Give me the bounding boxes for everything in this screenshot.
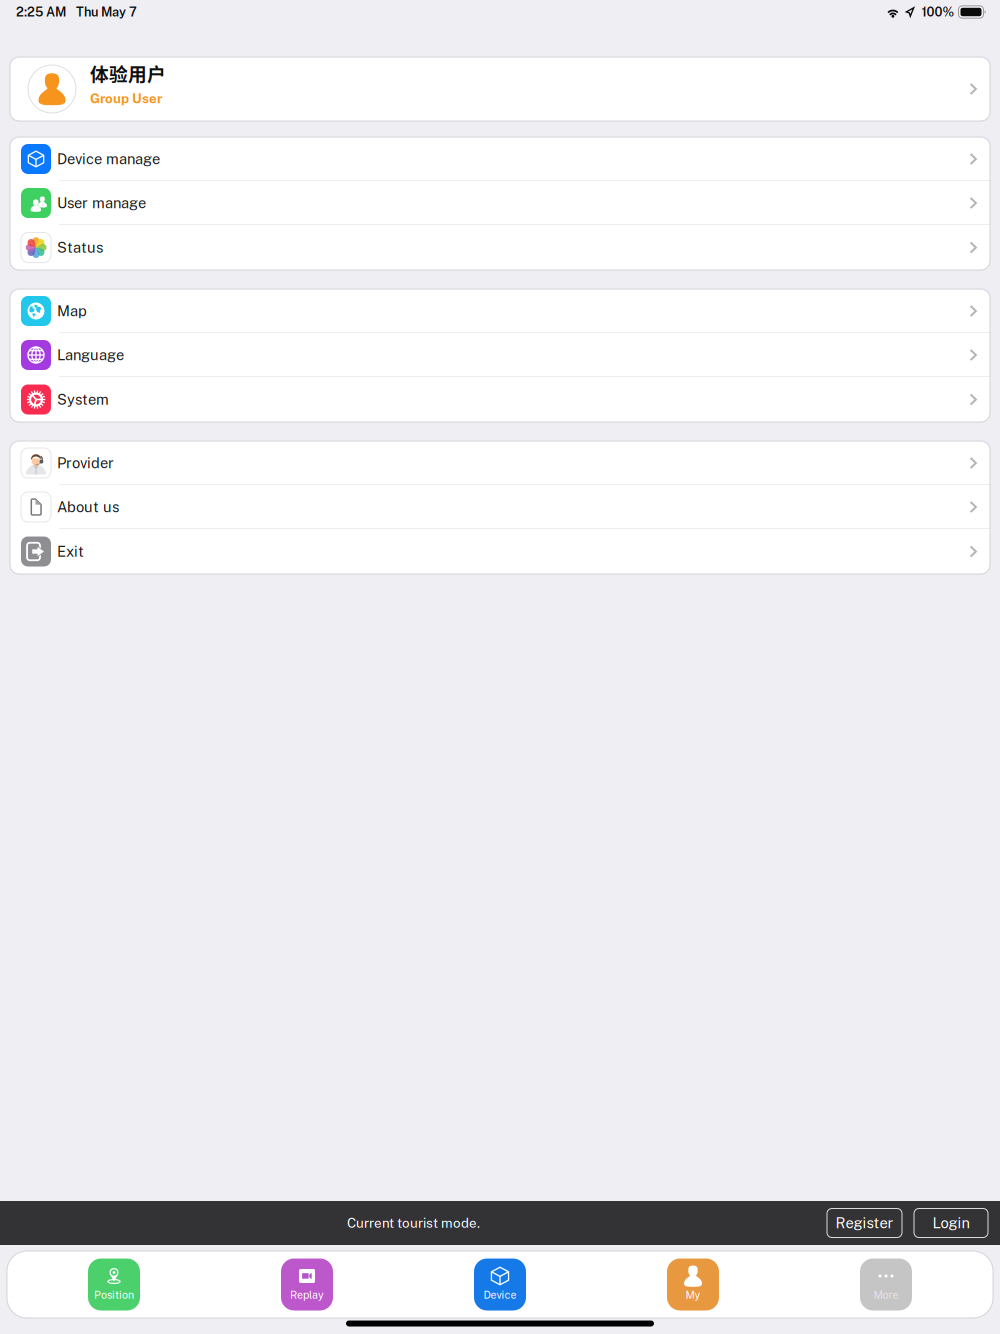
staticText: Language bbox=[57, 346, 124, 364]
staticText: Device manage bbox=[57, 150, 160, 168]
button[interactable]: User manage bbox=[10, 181, 990, 225]
staticText: Group User bbox=[90, 91, 162, 106]
button[interactable]: Register bbox=[827, 1208, 902, 1237]
button[interactable]: Device manage bbox=[10, 137, 990, 181]
button[interactable]: Device bbox=[474, 1258, 526, 1310]
staticText: Exit bbox=[57, 543, 84, 560]
button[interactable]: More bbox=[860, 1258, 912, 1310]
staticText: Position bbox=[94, 1288, 134, 1301]
staticText: Current tourist mode. bbox=[347, 1215, 480, 1231]
staticText: Device bbox=[483, 1288, 516, 1301]
button[interactable]: My bbox=[667, 1258, 719, 1310]
button[interactable]: Language bbox=[10, 333, 990, 377]
staticText: Login bbox=[932, 1214, 969, 1232]
button[interactable]: System bbox=[10, 377, 990, 422]
button[interactable]: Login bbox=[914, 1208, 988, 1237]
staticText: Status bbox=[57, 239, 103, 256]
button[interactable]: Exit bbox=[10, 529, 990, 574]
staticText: System bbox=[57, 391, 109, 408]
button[interactable]: Map bbox=[10, 289, 990, 333]
button[interactable]: 体验用户 bbox=[10, 57, 990, 121]
staticText: More bbox=[873, 1288, 898, 1301]
staticText: User manage bbox=[57, 194, 146, 212]
button[interactable]: About us bbox=[10, 485, 990, 529]
staticText: Register bbox=[835, 1214, 893, 1232]
staticText: Map bbox=[57, 302, 87, 320]
staticText: My bbox=[685, 1288, 700, 1301]
staticText: 体验用户 bbox=[90, 59, 166, 86]
staticText: Thu May 7 bbox=[76, 5, 137, 19]
button[interactable]: Position bbox=[88, 1258, 140, 1310]
staticText: 2:25 AM bbox=[16, 5, 66, 19]
staticText: Provider bbox=[57, 454, 114, 472]
button[interactable]: Status bbox=[10, 225, 990, 270]
staticText: About us bbox=[57, 498, 119, 516]
staticText: 100% bbox=[921, 5, 954, 19]
button[interactable]: Provider bbox=[10, 441, 990, 485]
staticText: Replay bbox=[290, 1288, 324, 1301]
button[interactable]: Replay bbox=[281, 1258, 333, 1310]
